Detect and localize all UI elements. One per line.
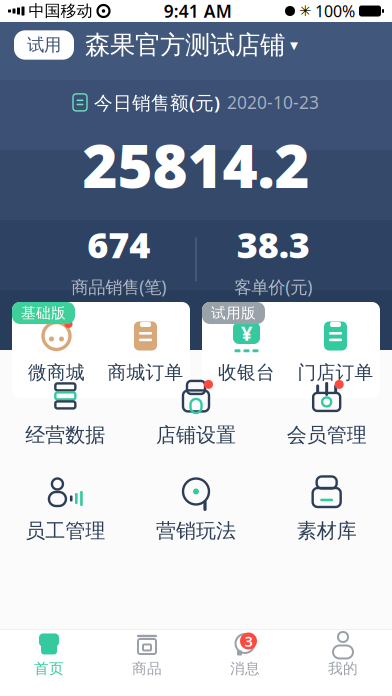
button[interactable]: 素材库 [261, 471, 392, 547]
staticText: 100% [315, 0, 355, 22]
staticText: 商品 [132, 659, 162, 677]
staticText: 25814.2 [82, 125, 309, 204]
staticText: ▾ [290, 36, 298, 54]
staticText: 收银台 [218, 361, 275, 384]
button[interactable]: 商城订单 [101, 320, 190, 384]
staticText: 森果官方测试店铺 [85, 29, 285, 60]
staticText: 38.3 [237, 220, 310, 268]
button[interactable]: 店铺设置 [131, 376, 261, 451]
staticText: 3 [244, 631, 252, 651]
staticText: 试用版 [211, 304, 256, 322]
button[interactable]: ¥ [202, 320, 291, 384]
button[interactable]: 会员管理 [261, 376, 392, 451]
staticText: ✳ [299, 3, 311, 19]
staticText: 营销玩法 [156, 518, 236, 543]
staticText: 首页 [34, 659, 64, 677]
button[interactable]: 微商城 [12, 320, 101, 384]
button[interactable]: 商品 [98, 631, 196, 677]
staticText: 客单价(元) [234, 275, 312, 298]
staticText: 试用 [27, 34, 61, 56]
staticText: 今日销售额(元) [94, 90, 220, 115]
staticText: 门店订单 [297, 361, 373, 384]
staticText: 基础版 [21, 304, 66, 322]
staticText: 消息 [230, 659, 260, 677]
staticText: 员工管理 [25, 518, 105, 543]
button[interactable]: 试用 [14, 30, 74, 60]
button[interactable]: 我的 [294, 631, 392, 677]
button[interactable]: 首页 [0, 631, 98, 677]
button[interactable]: 门店订单 [291, 320, 380, 384]
staticText: 中国移动 [28, 1, 92, 21]
staticText: 商城订单 [107, 361, 183, 384]
staticText: 674 [87, 220, 150, 268]
staticText: 2020-10-23 [227, 91, 319, 114]
button[interactable]: 经营数据 [0, 376, 131, 451]
button[interactable]: 营销玩法 [131, 471, 261, 547]
button[interactable]: 3 [196, 631, 294, 677]
button[interactable]: 员工管理 [0, 471, 131, 547]
staticText: 商品销售(笔) [71, 275, 166, 298]
staticText: 会员管理 [287, 423, 367, 447]
staticText: 经营数据 [25, 423, 105, 447]
staticText: ¥ [241, 320, 252, 346]
staticText: 店铺设置 [156, 423, 236, 447]
staticText: 9:41 AM [164, 0, 232, 22]
staticText: 我的 [328, 659, 358, 677]
staticText: 素材库 [297, 518, 357, 543]
button[interactable]: 森果官方测试店铺 [85, 29, 298, 60]
staticText: 微商城 [28, 361, 85, 384]
